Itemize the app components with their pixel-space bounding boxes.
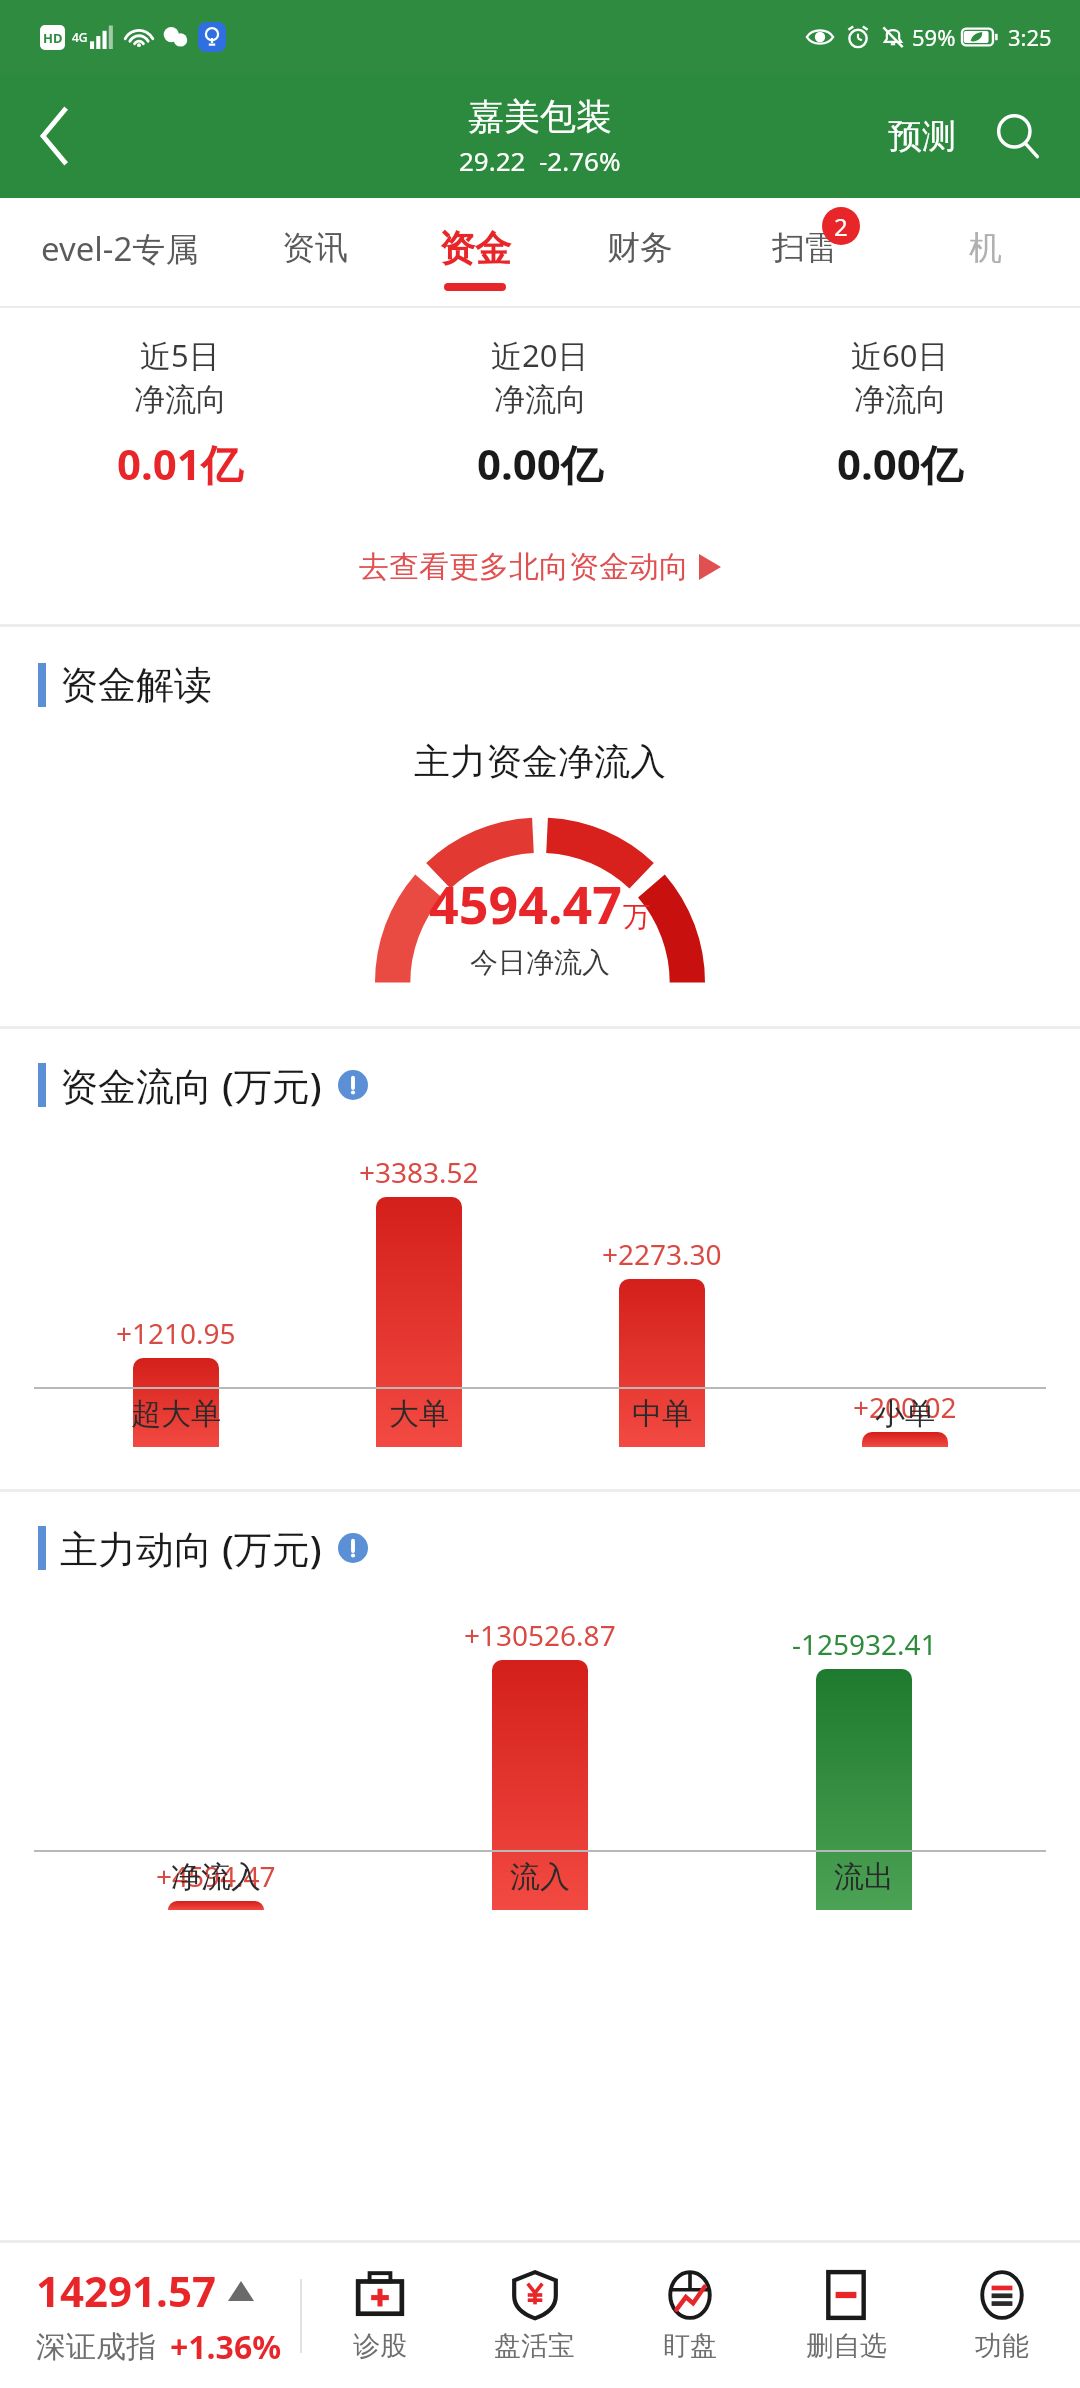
staticText: 14291.57 [36,2262,216,2319]
staticText: 超大单 [131,1395,221,1433]
staticText: 功能 [975,2329,1029,2363]
staticText: 诊股 [353,2329,407,2363]
button[interactable]: Back [0,81,110,191]
staticText: 2 [834,210,848,243]
staticText: 预测 [888,115,956,158]
button[interactable]: 资金 [390,198,560,308]
button[interactable]: 近60日 [720,334,1080,492]
staticText: +200.02 [853,1388,957,1426]
staticText: 0.00亿 [837,435,963,492]
staticText: 主力资金净流入 [414,739,666,784]
staticText: 嘉美包装 [468,94,612,139]
staticText: 流出 [834,1858,894,1896]
staticText: 今日净流入 [470,945,610,980]
button[interactable]: 14291.57 [36,2262,282,2369]
staticText: +4594.47 [156,1857,276,1895]
button[interactable]: 功能 [924,2243,1080,2388]
staticText: 万 [623,899,651,934]
staticText: 中单 [632,1395,692,1433]
staticText: 近60日 [851,334,949,376]
button[interactable]: 近5日 [0,334,360,492]
staticText: 主力动向 (万元) [60,1522,322,1574]
staticText: 4G [72,29,88,45]
button[interactable]: Search [980,98,1056,174]
button[interactable]: 诊股 [302,2243,457,2388]
staticText: 29.22 -2.76% [459,143,621,178]
staticText: 3:25 [1008,22,1052,52]
staticText: 盘活宝 [494,2329,575,2363]
button[interactable]: 近20日 [360,334,720,492]
button[interactable]: 去查看更多北向资金动向 [339,540,741,594]
staticText: +1210.95 [116,1314,236,1352]
button[interactable]: 资讯 [240,198,390,308]
button[interactable]: evel-2专属 [0,198,240,308]
button[interactable]: 扫雷 [720,198,890,308]
staticText: 59% [912,22,956,52]
staticText: 资金解读 [60,661,212,709]
staticText: 4594.47 [429,868,623,939]
staticText: 盯盘 [663,2329,717,2363]
staticText: 财务 [607,227,673,269]
button[interactable]: 机 [890,198,1080,308]
staticText: 小单 [875,1395,935,1433]
button[interactable]: 预测 [880,101,964,172]
staticText: 资讯 [282,227,348,269]
button[interactable]: 财务 [560,198,720,308]
button[interactable]: Info [338,1533,368,1563]
staticText: +1.36% [170,2325,282,2369]
staticText: 大单 [389,1395,449,1433]
button[interactable]: 盯盘 [612,2243,768,2388]
staticText: 0.01亿 [117,435,243,492]
staticText: -125932.41 [792,1625,937,1663]
staticText: 去查看更多北向资金动向 [359,548,689,586]
staticText: 流入 [510,1858,570,1896]
staticText: +2273.30 [602,1235,722,1273]
button[interactable]: 盘活宝 [457,2243,612,2388]
staticText: evel-2专属 [41,226,199,271]
staticText: 近5日 [140,334,220,376]
staticText: 0.00亿 [477,435,603,492]
staticText: +3383.52 [359,1153,479,1191]
staticText: 近20日 [491,334,589,376]
staticText: 净流入 [171,1858,261,1896]
staticText: 删自选 [806,2329,887,2363]
button[interactable]: 删自选 [768,2243,924,2388]
staticText: 净流向 [134,380,227,419]
staticText: 资金流向 (万元) [60,1059,322,1111]
staticText: 净流向 [494,380,587,419]
staticText: 机 [969,227,1002,269]
staticText: 净流向 [854,380,947,419]
staticText: +130526.87 [464,1616,616,1654]
button[interactable]: Info [338,1070,368,1100]
staticText: 资金 [439,226,511,271]
staticText: HD [43,29,63,47]
staticText: 扫雷 [772,227,838,269]
staticText: 深证成指 [36,2328,156,2366]
